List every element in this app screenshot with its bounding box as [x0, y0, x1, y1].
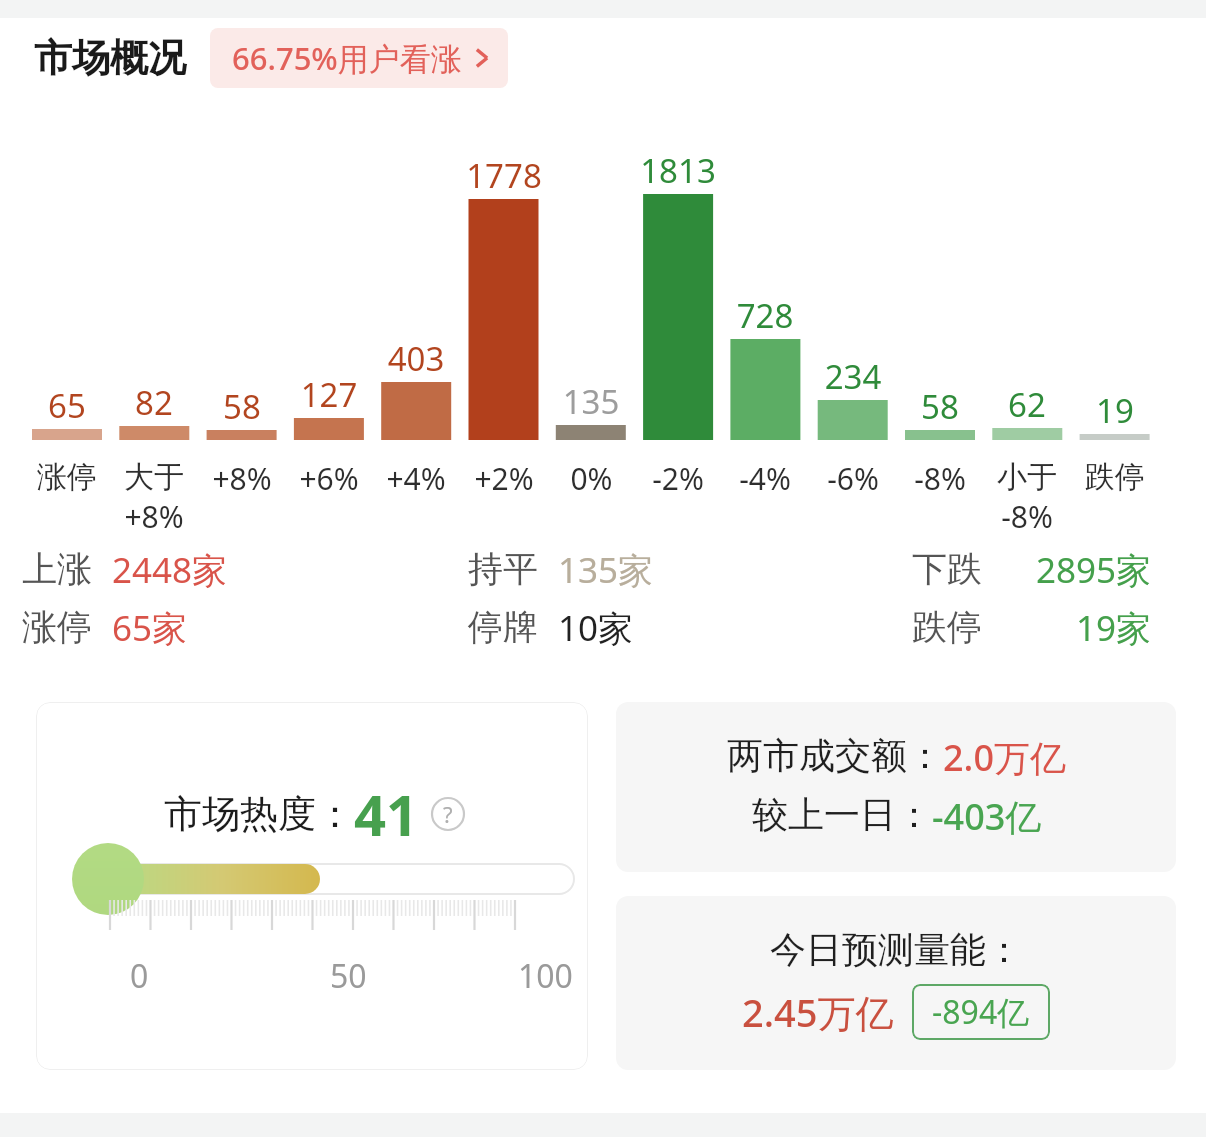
staticText: 135家: [558, 546, 654, 592]
staticText: 0%: [570, 458, 613, 499]
staticText: 50: [330, 954, 367, 998]
staticText: 58: [187, 384, 297, 429]
staticText: -8%: [914, 458, 966, 499]
staticText: 2.45万亿: [742, 986, 894, 1038]
staticText: +8%: [212, 458, 272, 499]
staticText: 66.75%用户看涨: [232, 37, 462, 79]
button[interactable]: 帮助: [431, 797, 465, 831]
staticText: 持平: [468, 547, 538, 591]
staticText: 小于: [997, 458, 1057, 496]
staticText: 65家: [112, 604, 188, 650]
staticText: 涨停: [22, 605, 92, 649]
staticText: ?: [443, 799, 453, 829]
staticText: +6%: [299, 458, 359, 499]
staticText: 较上一日：: [752, 792, 932, 837]
staticText: 今日预测量能：: [770, 927, 1022, 972]
staticText: 下跌: [912, 547, 982, 591]
staticText: 234: [798, 354, 908, 399]
staticText: 2448家: [112, 546, 228, 592]
staticText: 135: [536, 379, 646, 424]
staticText: 跌停: [1085, 458, 1145, 496]
staticText: 两市成交额：: [727, 733, 943, 778]
button[interactable]: 市场热度：: [36, 702, 588, 1070]
staticText: -403亿: [932, 792, 1042, 841]
staticText: 2.0万亿: [943, 733, 1066, 782]
staticText: +8%: [124, 496, 184, 537]
staticText: -894亿: [932, 990, 1030, 1034]
staticText: 跌停: [912, 605, 982, 649]
staticText: 41: [354, 776, 419, 852]
staticText: +4%: [386, 458, 446, 499]
staticText: -4%: [739, 458, 791, 499]
staticText: -8%: [1001, 496, 1053, 537]
staticText: 市场热度：: [164, 790, 354, 838]
staticText: -6%: [827, 458, 879, 499]
staticText: 403: [361, 336, 471, 381]
staticText: 65: [12, 383, 122, 428]
staticText: -2%: [652, 458, 704, 499]
button[interactable]: 今日预测量能：: [616, 896, 1176, 1070]
staticText: 19家: [1076, 604, 1152, 650]
staticText: +2%: [474, 458, 534, 499]
staticText: 82: [99, 380, 209, 425]
staticText: 上涨: [22, 547, 92, 591]
staticText: 127: [274, 372, 384, 417]
staticText: 10家: [558, 604, 634, 650]
staticText: 19: [1060, 388, 1170, 433]
button[interactable]: 66.75%用户看涨: [210, 28, 508, 88]
button[interactable]: 两市成交额：: [616, 702, 1176, 872]
staticText: 2895家: [1036, 546, 1152, 592]
staticText: 市场概况: [34, 34, 186, 82]
staticText: 停牌: [468, 605, 538, 649]
staticText: 728: [710, 293, 820, 338]
staticText: 1778: [449, 153, 559, 198]
staticText: 58: [885, 384, 995, 429]
staticText: 1813: [623, 148, 733, 193]
staticText: 涨停: [37, 458, 97, 496]
staticText: 62: [972, 382, 1082, 427]
staticText: 100: [518, 954, 573, 998]
staticText: 0: [130, 954, 149, 998]
staticText: 大于: [124, 458, 184, 496]
